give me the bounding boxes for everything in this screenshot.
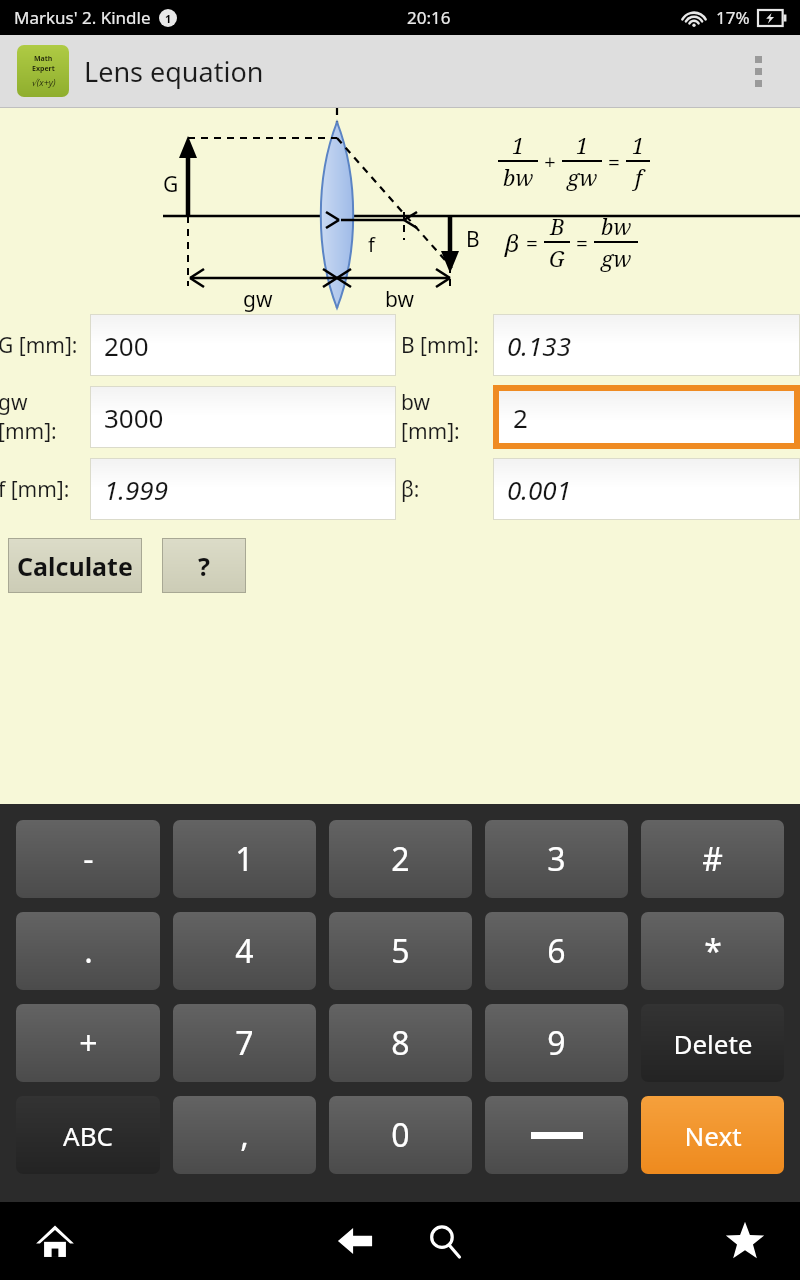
staticText: 1 xyxy=(632,130,645,160)
button[interactable]: * xyxy=(641,912,784,990)
staticText: , xyxy=(240,1113,249,1157)
staticText: 3000 xyxy=(104,400,164,435)
button[interactable]: 0.133 xyxy=(493,314,800,376)
button[interactable]: 1.999 xyxy=(90,458,396,520)
staticText: gw [mm]: xyxy=(0,388,88,446)
button[interactable]: 7 xyxy=(173,1004,316,1082)
button[interactable]: - xyxy=(16,820,160,898)
staticText: Lens equation xyxy=(84,53,264,90)
button[interactable]: , xyxy=(173,1096,316,1174)
staticText: # xyxy=(702,837,723,881)
staticText: B [mm]: xyxy=(401,331,479,360)
staticText: G xyxy=(163,170,179,199)
button[interactable]: 5 xyxy=(329,912,472,990)
staticText: 1.999 xyxy=(104,472,168,507)
staticText: 1 xyxy=(235,837,254,881)
staticText: β xyxy=(505,226,520,259)
staticText: 0.001 xyxy=(507,472,571,507)
button[interactable]: ? xyxy=(162,538,246,593)
staticText: 1 xyxy=(576,130,589,160)
staticText: gw xyxy=(567,162,598,192)
staticText: 3 xyxy=(547,837,566,881)
staticText: ? xyxy=(198,549,210,583)
button[interactable]: More options xyxy=(730,35,786,107)
staticText: 9 xyxy=(547,1021,566,1065)
button[interactable]: 1 xyxy=(173,820,316,898)
staticText: ABC xyxy=(63,1118,113,1153)
button[interactable]: Home xyxy=(0,1202,110,1280)
staticText: 0 xyxy=(391,1113,410,1157)
staticText: 1 xyxy=(165,11,172,26)
button[interactable]: Search xyxy=(400,1202,490,1280)
button[interactable]: Next xyxy=(641,1096,784,1174)
button[interactable]: 200 xyxy=(90,314,396,376)
staticText: B xyxy=(550,211,565,241)
staticText: f xyxy=(368,231,375,258)
staticText: 6 xyxy=(547,929,566,973)
button[interactable]: 3 xyxy=(485,820,628,898)
staticText: Delete xyxy=(673,1026,753,1061)
staticText: √(x+y) xyxy=(31,76,56,88)
staticText: = xyxy=(602,146,626,176)
staticText: * xyxy=(704,929,722,973)
staticText: 200 xyxy=(104,328,149,363)
staticText: G xyxy=(549,243,565,273)
button[interactable]: 4 xyxy=(173,912,316,990)
staticText: bw [mm]: xyxy=(401,388,493,446)
staticText: 8 xyxy=(391,1021,410,1065)
staticText: 1 xyxy=(512,130,525,160)
button[interactable]: # xyxy=(641,820,784,898)
staticText: 4 xyxy=(235,929,254,973)
staticText: β: xyxy=(401,475,420,504)
button[interactable]: Math Expert app icon xyxy=(17,45,69,97)
button[interactable]: 6 xyxy=(485,912,628,990)
staticText: bw xyxy=(503,162,534,192)
staticText: f xyxy=(635,162,642,192)
staticText: 2 xyxy=(391,837,410,881)
staticText: Markus' 2. Kindle xyxy=(14,6,151,29)
button[interactable]: 2 xyxy=(499,391,794,443)
staticText: 7 xyxy=(235,1021,254,1065)
staticText: Math xyxy=(34,54,53,64)
staticText: 20:16 xyxy=(407,6,451,29)
button[interactable]: Back xyxy=(310,1202,400,1280)
staticText: + xyxy=(79,1021,98,1065)
staticText: + xyxy=(538,146,562,176)
staticText: . xyxy=(84,929,93,973)
button[interactable]: 2 xyxy=(329,820,472,898)
staticText: gw xyxy=(601,243,632,273)
button[interactable]: Favorites xyxy=(690,1202,800,1280)
staticText: bw xyxy=(385,285,415,314)
button[interactable]: 0 xyxy=(329,1096,472,1174)
staticText: f [mm]: xyxy=(0,475,70,504)
staticText: = xyxy=(520,227,544,257)
button[interactable]: . xyxy=(16,912,160,990)
button[interactable]: + xyxy=(16,1004,160,1082)
staticText: Calculate xyxy=(17,549,133,583)
staticText: B xyxy=(466,225,480,254)
staticText: 0.133 xyxy=(507,328,571,363)
button[interactable]: Delete xyxy=(641,1004,784,1082)
button[interactable]: Calculate xyxy=(8,538,142,593)
staticText: G [mm]: xyxy=(0,331,78,360)
button[interactable]: 0.001 xyxy=(493,458,800,520)
button[interactable]: ABC xyxy=(16,1096,160,1174)
staticText: 5 xyxy=(391,929,410,973)
staticText: 2 xyxy=(513,400,528,435)
button[interactable]: 3000 xyxy=(90,386,396,448)
staticText: 17% xyxy=(716,6,750,29)
staticText: Next xyxy=(684,1118,742,1153)
staticText: = xyxy=(570,227,594,257)
button[interactable]: Space xyxy=(485,1096,628,1174)
staticText: gw xyxy=(243,285,273,314)
button[interactable]: 9 xyxy=(485,1004,628,1082)
staticText: bw xyxy=(601,211,632,241)
staticText: Expert xyxy=(32,64,55,74)
staticText: - xyxy=(83,837,94,881)
button[interactable]: 8 xyxy=(329,1004,472,1082)
